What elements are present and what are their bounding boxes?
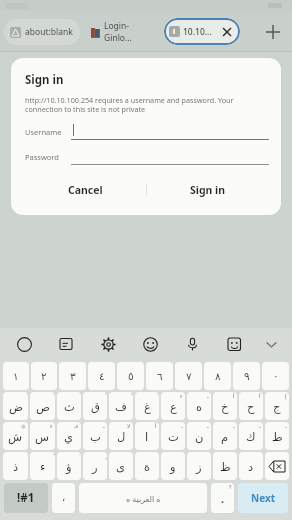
button[interactable]: Next bbox=[238, 483, 288, 513]
button[interactable]: ٢ bbox=[31, 362, 57, 390]
button[interactable]: about:blank bbox=[4, 19, 80, 45]
staticText: ح bbox=[247, 400, 255, 413]
button[interactable]: ٠ bbox=[262, 362, 289, 390]
staticText: إ bbox=[285, 393, 287, 399]
button[interactable]: ه العربية ه bbox=[79, 483, 207, 513]
button[interactable]: ْ bbox=[135, 392, 159, 420]
button[interactable]: Settings bbox=[87, 328, 129, 361]
button[interactable]: i bbox=[164, 18, 240, 45]
button[interactable]: ُ bbox=[57, 452, 81, 480]
button[interactable]: ٌ bbox=[83, 392, 107, 420]
staticText: about:blank bbox=[25, 26, 73, 38]
button[interactable]: ّ bbox=[109, 392, 133, 420]
staticText: ى bbox=[74, 423, 79, 429]
staticText: ر bbox=[92, 460, 98, 473]
staticText: ٣ bbox=[70, 370, 76, 382]
button[interactable]: إ bbox=[265, 392, 289, 420]
button[interactable]: !#1 bbox=[4, 483, 48, 513]
staticText: ـ bbox=[207, 423, 209, 429]
button[interactable]: ـ bbox=[161, 422, 185, 450]
staticText: ن bbox=[195, 430, 204, 443]
button[interactable]: لا bbox=[109, 422, 133, 450]
staticText: 10.10... bbox=[183, 26, 212, 38]
button[interactable]: Voice input bbox=[171, 328, 213, 361]
button[interactable]: ٧ bbox=[175, 362, 202, 390]
button[interactable]: ـ bbox=[83, 422, 107, 450]
button[interactable]: ئ bbox=[3, 422, 28, 450]
button[interactable]: ٦ bbox=[146, 362, 173, 390]
button[interactable]: ـ bbox=[187, 422, 211, 450]
staticText: ى bbox=[116, 460, 126, 473]
button[interactable]: ٩ bbox=[233, 362, 260, 390]
staticText: ق bbox=[91, 400, 100, 413]
staticText: Username bbox=[25, 127, 62, 137]
button[interactable]: ٣ bbox=[59, 362, 86, 390]
button[interactable]: Emoji bbox=[129, 328, 171, 361]
button[interactable]: Text editing bbox=[45, 328, 87, 361]
staticText: ٠ bbox=[273, 370, 279, 382]
staticText: ع bbox=[170, 400, 177, 413]
staticText: ة bbox=[144, 460, 151, 473]
staticText: ب bbox=[90, 430, 101, 443]
button[interactable]: Cancel bbox=[25, 175, 146, 205]
button[interactable]: آ bbox=[239, 392, 263, 420]
button[interactable]: و bbox=[161, 452, 185, 480]
staticText: س bbox=[35, 430, 50, 443]
button[interactable]: Backspace bbox=[265, 452, 289, 480]
button[interactable]: ز bbox=[187, 452, 211, 480]
button[interactable]: ذ bbox=[3, 452, 28, 480]
staticText: ئ bbox=[21, 423, 26, 429]
staticText: م bbox=[221, 430, 229, 443]
button[interactable]: ء bbox=[161, 392, 185, 420]
staticText: ء bbox=[50, 423, 53, 429]
button[interactable]: ُ bbox=[57, 392, 81, 420]
staticText: i bbox=[173, 27, 176, 37]
staticText: ٨ bbox=[215, 370, 221, 382]
staticText: ا bbox=[145, 430, 149, 443]
button[interactable]: ٨ bbox=[204, 362, 231, 390]
button[interactable]: ؟ bbox=[211, 483, 234, 513]
button[interactable]: Collapse keyboard bbox=[255, 328, 288, 361]
button[interactable]: أ bbox=[135, 422, 159, 450]
button[interactable]: Close tab bbox=[219, 24, 235, 40]
button[interactable]: ء bbox=[30, 422, 55, 450]
button[interactable]: ٍ bbox=[83, 452, 107, 480]
staticText: ٤ bbox=[99, 370, 105, 382]
staticText: ـ bbox=[259, 423, 261, 429]
button[interactable]: ٥ bbox=[117, 362, 144, 390]
staticText: ط bbox=[272, 430, 283, 443]
button[interactable]: ى bbox=[57, 422, 81, 450]
button[interactable]: Login-Ginlo... bbox=[86, 19, 160, 45]
staticText: ذ bbox=[13, 460, 19, 473]
button[interactable]: ـ bbox=[213, 422, 237, 450]
staticText: ٧ bbox=[186, 370, 192, 382]
button[interactable]: ً bbox=[30, 392, 55, 420]
button[interactable]: ـ bbox=[265, 422, 289, 450]
button[interactable]: ـ bbox=[239, 422, 263, 450]
staticText: غ bbox=[144, 400, 151, 413]
button[interactable]: أ bbox=[213, 392, 237, 420]
staticText: ٥ bbox=[128, 370, 134, 382]
button[interactable]: َ bbox=[3, 392, 28, 420]
button[interactable]: ظ bbox=[213, 452, 237, 480]
staticText: آ bbox=[259, 393, 261, 399]
button[interactable]: د bbox=[239, 452, 263, 480]
button[interactable]: Sign in bbox=[147, 175, 269, 205]
button[interactable]: ى bbox=[109, 452, 133, 480]
staticText: ٦ bbox=[157, 370, 163, 382]
button[interactable]: ـ bbox=[187, 392, 211, 420]
staticText: ء bbox=[40, 460, 46, 473]
button[interactable]: New tab bbox=[258, 17, 288, 47]
button[interactable]: ١ bbox=[3, 362, 29, 390]
staticText: ـ bbox=[233, 423, 235, 429]
button[interactable]: ، bbox=[52, 483, 75, 513]
staticText: ش bbox=[8, 430, 23, 443]
button[interactable]: ة bbox=[135, 452, 159, 480]
staticText: ، bbox=[62, 492, 66, 504]
button[interactable]: Translate bbox=[4, 328, 45, 361]
button[interactable]: ّ bbox=[30, 452, 55, 480]
staticText: ـ bbox=[285, 423, 287, 429]
staticText: ت bbox=[168, 430, 179, 443]
button[interactable]: ٤ bbox=[88, 362, 115, 390]
button[interactable]: Stickers bbox=[213, 328, 255, 361]
